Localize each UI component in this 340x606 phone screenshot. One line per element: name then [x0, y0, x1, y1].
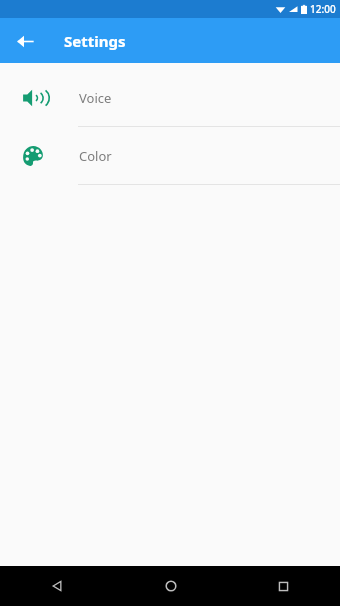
button[interactable]: Home [114, 566, 227, 606]
button[interactable]: Recent apps [227, 566, 340, 606]
staticText: Voice [79, 89, 112, 107]
button[interactable]: Voice [0, 69, 340, 126]
staticText: Settings [64, 31, 126, 51]
staticText: Color [79, 147, 112, 165]
button[interactable]: Color [0, 127, 340, 184]
other: Color [21, 144, 45, 168]
other: Voice [21, 86, 45, 110]
button[interactable]: Back [8, 24, 42, 58]
button[interactable]: Back [0, 566, 114, 606]
staticText: 12:00 [310, 2, 336, 16]
